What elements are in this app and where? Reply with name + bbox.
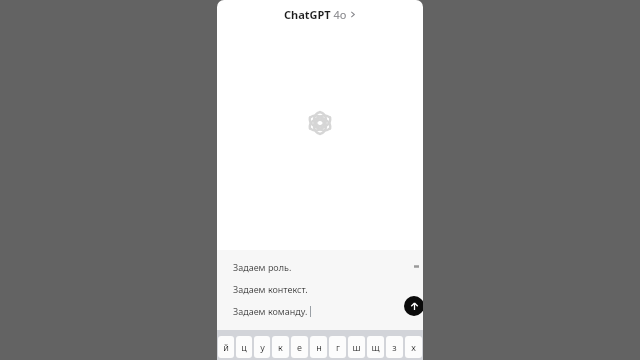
button[interactable]: г xyxy=(329,336,346,358)
staticText: щ xyxy=(371,341,380,353)
staticText: Задаем контекст. xyxy=(233,283,308,295)
staticText: з xyxy=(392,341,397,353)
staticText: х xyxy=(411,341,416,353)
button[interactable]: ChatGPT 4o xyxy=(276,4,364,25)
staticText: ш xyxy=(352,341,361,353)
staticText: у xyxy=(260,341,265,353)
staticText: ц xyxy=(241,341,247,353)
button[interactable]: е xyxy=(291,336,308,358)
staticText: ChatGPT 4o xyxy=(284,7,347,22)
button[interactable]: к xyxy=(272,336,289,358)
button[interactable]: ш xyxy=(348,336,365,358)
button[interactable]: н xyxy=(310,336,327,358)
staticText: Задаем команду. xyxy=(233,305,308,317)
staticText: Задаем роль. xyxy=(233,261,292,273)
button[interactable]: х xyxy=(405,336,422,358)
staticText: й xyxy=(223,341,229,353)
button[interactable]: й xyxy=(218,336,234,358)
staticText: н xyxy=(316,341,322,353)
staticText: е xyxy=(297,341,302,353)
button[interactable]: Send xyxy=(404,296,423,316)
staticText: г xyxy=(336,341,340,353)
button[interactable]: у xyxy=(254,336,270,358)
button[interactable]: щ xyxy=(367,336,384,358)
button[interactable]: Attach xyxy=(411,261,421,271)
button[interactable]: ц xyxy=(236,336,252,358)
button[interactable]: з xyxy=(386,336,403,358)
staticText: к xyxy=(278,341,283,353)
